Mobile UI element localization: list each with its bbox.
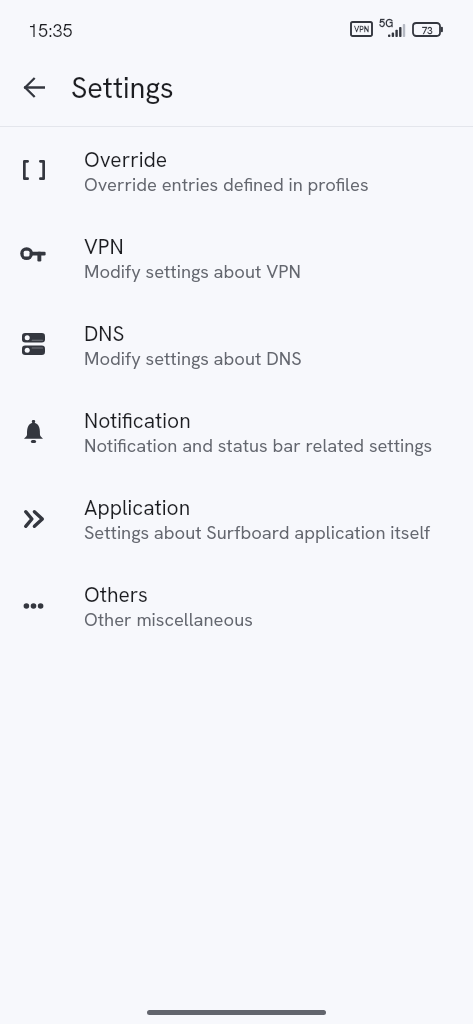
staticText: Other miscellaneous [84,608,253,632]
staticText: Notification [84,407,191,434]
button[interactable]: Back [10,63,58,111]
staticText: VPN [354,24,370,34]
staticText: Notification and status bar related sett… [84,434,433,458]
button[interactable]: DNS [0,305,473,392]
staticText: Modify settings about VPN [84,260,301,284]
staticText: Modify settings about DNS [84,347,302,371]
staticText: 15:35 [28,19,73,42]
staticText: Application [84,494,191,521]
button[interactable]: Others [0,566,473,653]
staticText: DNS [84,320,125,347]
staticText: Override entries defined in profiles [84,173,369,197]
button[interactable]: VPN [0,218,473,305]
button[interactable]: Notification [0,392,473,479]
staticText: VPN [84,233,124,260]
staticText: Override [84,146,168,173]
staticText: Others [84,581,148,608]
staticText: Settings about Surfboard application its… [84,521,431,545]
button[interactable]: Application [0,479,473,566]
staticText: 5G [379,16,394,30]
staticText: Settings [71,69,174,107]
staticText: 73 [422,24,433,36]
button[interactable]: Override [0,131,473,218]
